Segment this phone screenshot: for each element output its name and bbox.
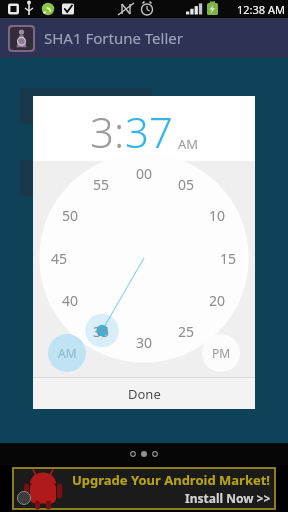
button[interactable]: 3 [90, 103, 114, 160]
button[interactable]: App icon [8, 25, 35, 52]
button[interactable]: Done [33, 378, 255, 409]
staticText: 12:38 AM [237, 2, 285, 17]
staticText: : [114, 103, 125, 160]
staticText: 40 [62, 291, 79, 310]
staticText: Done [128, 385, 161, 403]
button[interactable]: Page 2 [141, 451, 147, 457]
staticText: 15 [220, 249, 237, 268]
button[interactable]: 37 [125, 103, 173, 160]
staticText: 45 [51, 249, 68, 268]
staticText: PM [212, 345, 231, 361]
staticText: 55 [93, 175, 110, 194]
staticText: 30 [136, 333, 153, 352]
staticText: Install Now >> [185, 490, 271, 506]
staticText: Upgrade Your Android Market! [72, 471, 271, 489]
button[interactable]: PM [202, 334, 240, 372]
button[interactable]: Page 1 [130, 451, 136, 457]
staticText: 05 [178, 175, 195, 194]
staticText: SHA1 Fortune Teller [44, 28, 183, 48]
button[interactable]: AM [48, 334, 86, 372]
staticText: 00 [136, 164, 153, 183]
button[interactable]: Upgrade Your Android Market! [0, 465, 288, 512]
staticText: 20 [209, 291, 226, 310]
staticText: 25 [178, 322, 195, 341]
staticText: 50 [62, 206, 79, 225]
button[interactable]: Page 3 [152, 451, 158, 457]
button[interactable]: AM [178, 135, 199, 153]
staticText: AM [58, 345, 77, 361]
staticText: 35 [93, 322, 110, 341]
staticText: 10 [209, 206, 226, 225]
